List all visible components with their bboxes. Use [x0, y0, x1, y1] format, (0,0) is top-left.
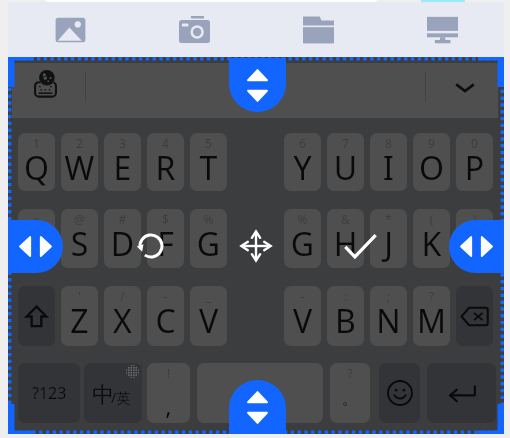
button[interactable]: Images — [8, 2, 132, 57]
staticText: $ — [147, 211, 184, 227]
button[interactable]: 3 — [104, 133, 141, 191]
button[interactable]: 6 — [284, 133, 321, 191]
staticText: 7 — [327, 135, 364, 151]
button[interactable]: 1 — [18, 133, 55, 191]
button[interactable]: 8 — [370, 133, 407, 191]
staticText: T — [190, 146, 227, 190]
button[interactable]: / — [104, 286, 141, 346]
button[interactable]: ~ — [18, 209, 55, 268]
staticText: 。 — [330, 389, 370, 409]
staticText: M — [413, 299, 450, 343]
button[interactable]: Emoji — [379, 363, 420, 423]
button[interactable]: # — [104, 209, 141, 268]
button[interactable]: Reset keyboard size — [137, 232, 165, 260]
button[interactable]: ( — [413, 209, 450, 268]
staticText: 3 — [104, 135, 141, 151]
button[interactable]: Resize keyboard left — [8, 220, 63, 273]
button[interactable]: Symbols — [18, 363, 80, 423]
button[interactable]: Camera — [132, 2, 256, 57]
button[interactable]: 2 — [61, 133, 98, 191]
staticText: Y — [284, 146, 321, 190]
staticText: B — [327, 299, 364, 343]
staticText: F — [147, 222, 184, 266]
button[interactable]: ? — [413, 286, 450, 346]
button[interactable]: 7 — [327, 133, 364, 191]
staticText: G — [284, 222, 321, 266]
staticText: # — [104, 211, 141, 227]
button[interactable]: ? — [330, 363, 370, 423]
button[interactable]: Resize keyboard right — [449, 220, 504, 273]
button[interactable]: Switch language — [34, 70, 57, 98]
button[interactable]: & — [327, 209, 364, 268]
button[interactable]: Done — [344, 234, 377, 258]
staticText: 0 — [456, 135, 493, 151]
staticText: 9 — [413, 135, 450, 151]
button[interactable]: Screen mirror — [380, 2, 504, 57]
button[interactable]: Move keyboard — [239, 229, 273, 263]
staticText: K — [413, 222, 450, 266]
button[interactable]: Enter — [427, 363, 496, 423]
button[interactable]: * — [370, 209, 407, 268]
staticText: % — [284, 211, 321, 227]
button[interactable]: @ — [61, 209, 98, 268]
button[interactable]: 9 — [413, 133, 450, 191]
button[interactable]: Chinese English switch — [84, 363, 142, 423]
button[interactable]: ) — [456, 209, 493, 268]
button[interactable]: ! — [147, 363, 190, 423]
staticText: D — [104, 222, 141, 266]
staticText: /英 — [111, 388, 131, 407]
staticText: % — [190, 211, 227, 227]
button[interactable]: Files — [256, 2, 380, 57]
button[interactable]: Space — [197, 363, 323, 423]
button[interactable]: Expand toolbar — [455, 82, 475, 93]
staticText: S — [61, 222, 98, 266]
button[interactable]: _ — [190, 286, 227, 346]
button[interactable]: - — [284, 286, 321, 346]
button[interactable]: 0 — [456, 133, 493, 191]
staticText: P — [456, 146, 493, 190]
button[interactable]: ' — [61, 286, 98, 346]
staticText: 8 — [370, 135, 407, 151]
staticText: & — [327, 211, 364, 227]
button[interactable]: 5 — [190, 133, 227, 191]
staticText: , — [147, 389, 190, 422]
staticText: V — [190, 299, 227, 343]
staticText: Z — [61, 299, 98, 343]
staticText: N — [370, 299, 407, 343]
button[interactable]: - — [147, 286, 184, 346]
button[interactable]: ; — [370, 286, 407, 346]
button[interactable]: % — [190, 209, 227, 268]
staticText: 2 — [61, 135, 98, 151]
staticText: U — [327, 146, 364, 190]
staticText: ) — [456, 211, 493, 227]
button[interactable]: $ — [147, 209, 184, 268]
staticText: A — [18, 222, 55, 266]
staticText: J — [370, 222, 407, 266]
staticText: ?123 — [32, 382, 67, 404]
staticText: G — [190, 222, 227, 266]
staticText: 5 — [190, 135, 227, 151]
button[interactable]: Resize keyboard bottom — [229, 380, 286, 434]
button[interactable]: % — [284, 209, 321, 268]
staticText: @ — [61, 211, 98, 227]
button[interactable]: : — [327, 286, 364, 346]
button[interactable]: 4 — [147, 133, 184, 191]
staticText: 6 — [284, 135, 321, 151]
button[interactable]: Shift — [18, 286, 55, 346]
staticText: H — [327, 222, 364, 266]
button[interactable]: Backspace — [456, 286, 493, 346]
staticText: C — [147, 299, 184, 343]
button[interactable]: Resize keyboard top — [229, 58, 286, 112]
staticText: I — [370, 146, 407, 190]
staticText: X — [104, 299, 141, 343]
staticText: ~ — [18, 211, 55, 227]
